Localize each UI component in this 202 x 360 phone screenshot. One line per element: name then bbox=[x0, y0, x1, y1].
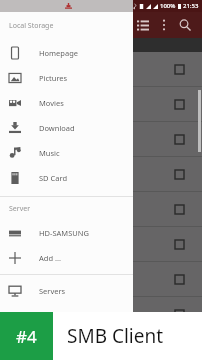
button[interactable]: Pictures bbox=[0, 65, 133, 90]
button[interactable]: Select item 7 bbox=[0, 297, 202, 332]
staticText: Server bbox=[9, 204, 31, 214]
staticText: Add ... bbox=[39, 253, 61, 263]
button[interactable]: Select item 3 bbox=[175, 170, 184, 179]
staticText: SD Card bbox=[39, 173, 68, 183]
button[interactable]: Select item 7 bbox=[175, 310, 184, 319]
button[interactable]: Servers bbox=[0, 278, 133, 303]
button[interactable]: Homepage bbox=[0, 40, 133, 65]
button[interactable]: Select item 6 bbox=[175, 275, 184, 284]
staticText: HD-SAMSUNG bbox=[39, 228, 89, 238]
button[interactable]: Select item 1 bbox=[0, 87, 202, 122]
staticText: 21:53 bbox=[183, 2, 199, 10]
staticText: Homepage bbox=[39, 48, 78, 58]
button[interactable]: More options bbox=[154, 15, 174, 35]
button[interactable]: Add ... bbox=[0, 245, 133, 270]
staticText: #4 bbox=[16, 325, 37, 348]
staticText: Uncompleted transfer bbox=[39, 311, 117, 321]
button[interactable]: Select item 1 bbox=[175, 100, 184, 109]
button[interactable]: SD Card bbox=[0, 165, 133, 190]
button[interactable]: Select item 6 bbox=[0, 262, 202, 297]
staticText: Movies bbox=[39, 98, 64, 108]
staticText: Pictures bbox=[39, 73, 68, 83]
button[interactable]: HD-SAMSUNG bbox=[0, 220, 133, 245]
staticText: SMB Client bbox=[67, 323, 164, 349]
button[interactable]: Download bbox=[0, 115, 133, 140]
button[interactable]: List view bbox=[132, 14, 154, 36]
button[interactable]: Select item 5 bbox=[175, 240, 184, 249]
button[interactable]: Select item 2 bbox=[0, 122, 202, 157]
staticText: 100% bbox=[160, 2, 176, 10]
button[interactable]: Select item 4 bbox=[0, 192, 202, 227]
button[interactable]: Select item 0 bbox=[0, 52, 202, 87]
staticText: Local Storage bbox=[9, 21, 54, 31]
button[interactable]: Select item 3 bbox=[0, 157, 202, 192]
button[interactable]: Select item 0 bbox=[175, 65, 184, 74]
button[interactable]: Music bbox=[0, 140, 133, 165]
staticText: Music bbox=[39, 148, 60, 158]
button[interactable]: Select item 2 bbox=[175, 135, 184, 144]
button[interactable]: Select item 5 bbox=[0, 227, 202, 262]
button[interactable]: Search bbox=[174, 14, 196, 36]
staticText: Servers bbox=[39, 286, 66, 296]
button[interactable]: Movies bbox=[0, 90, 133, 115]
button[interactable]: Select item 8 bbox=[0, 332, 202, 360]
staticText: Download bbox=[39, 123, 75, 133]
button[interactable]: Select item 4 bbox=[175, 205, 184, 214]
button[interactable]: Uncompleted transfer bbox=[0, 303, 133, 328]
